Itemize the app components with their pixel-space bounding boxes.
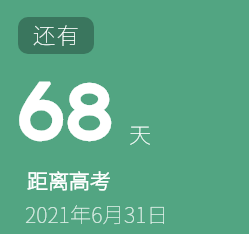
button[interactable]: 还有 (18, 17, 94, 54)
staticText: 2021年6月31日 (25, 198, 168, 229)
staticText: 天 (129, 117, 152, 149)
staticText: 还有 (33, 18, 81, 51)
staticText: 距离高考 (27, 165, 111, 195)
staticText: 68 (15, 60, 112, 160)
